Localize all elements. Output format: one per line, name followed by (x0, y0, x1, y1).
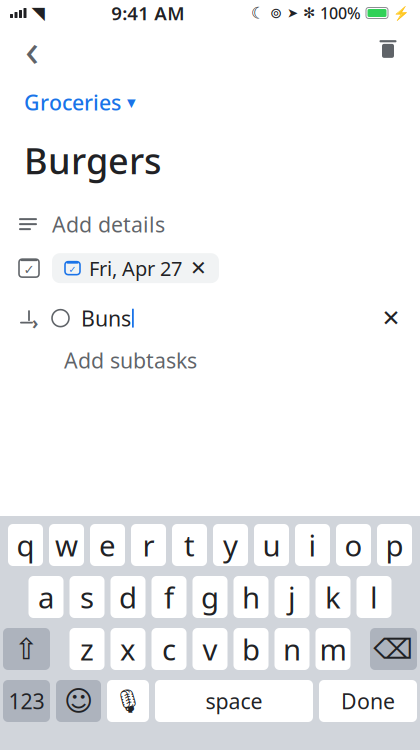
staticText: Groceries (24, 88, 121, 116)
staticText: ◥ (31, 3, 44, 23)
staticText: space (205, 687, 262, 715)
staticText: f (164, 577, 174, 616)
staticText: x (120, 629, 136, 668)
staticText: l (370, 577, 378, 616)
staticText: ⚡ (393, 5, 410, 21)
staticText: ✕ (381, 305, 400, 331)
button[interactable]: b (233, 628, 268, 670)
staticText: Done (341, 687, 395, 715)
staticText: ✻ (303, 5, 315, 21)
staticText: n (283, 629, 301, 668)
staticText: o (344, 525, 362, 564)
button[interactable]: q (8, 524, 43, 566)
staticText: b (242, 629, 260, 668)
button[interactable]: space (155, 680, 313, 722)
staticText: ⇧ (14, 632, 39, 666)
button[interactable]: y (213, 524, 248, 566)
staticText: ➤ (287, 5, 298, 20)
staticText: ⌫ (373, 633, 413, 665)
button[interactable]: Emoji (56, 680, 101, 722)
staticText: a (38, 577, 54, 616)
staticText: Add subtasks (64, 346, 197, 374)
staticText: Fri, Apr 27 (89, 255, 182, 281)
button[interactable]: l (356, 576, 391, 618)
staticText: r (142, 525, 154, 564)
button[interactable]: s (69, 576, 104, 618)
staticText: Burgers (24, 136, 161, 184)
staticText: h (242, 577, 260, 616)
staticText: d (119, 577, 137, 616)
button[interactable]: g (192, 576, 227, 618)
button[interactable]: Add subtasks (0, 342, 420, 378)
staticText: ▾ (127, 92, 136, 112)
button[interactable]: i (295, 524, 330, 566)
button[interactable]: w (49, 524, 84, 566)
staticText: i (308, 525, 316, 564)
button[interactable]: Remove subtask (374, 301, 408, 335)
staticText: u (262, 525, 280, 564)
staticText: ✓ (68, 264, 76, 275)
button[interactable]: Delete (370, 628, 417, 670)
staticText: y (223, 525, 238, 564)
button[interactable]: j (274, 576, 309, 618)
staticText: p (385, 525, 403, 564)
staticText: t (184, 525, 195, 564)
button[interactable]: d (110, 576, 145, 618)
staticText: z (80, 629, 94, 668)
button[interactable]: Delete task (364, 26, 412, 72)
button[interactable]: ✓ (52, 253, 219, 283)
button[interactable]: f (151, 576, 186, 618)
staticText: s (80, 577, 94, 616)
button[interactable]: h (233, 576, 268, 618)
button[interactable]: Done (319, 680, 417, 722)
staticText: c (162, 629, 176, 668)
button[interactable]: e (90, 524, 125, 566)
button[interactable]: u (254, 524, 289, 566)
button[interactable]: a (28, 576, 63, 618)
button[interactable]: p (377, 524, 412, 566)
button[interactable]: Groceries (24, 84, 136, 120)
staticText: Add details (52, 210, 165, 238)
button[interactable]: m (315, 628, 350, 670)
staticText: ✓ (23, 262, 34, 277)
staticText: v (202, 629, 217, 668)
staticText: e (99, 525, 116, 564)
button[interactable]: n (274, 628, 309, 670)
staticText: g (201, 577, 219, 616)
staticText: ☺ (64, 685, 93, 717)
button[interactable]: Add details (0, 202, 420, 246)
staticText: j (288, 577, 296, 616)
staticText: ✕ (190, 257, 207, 279)
button[interactable]: Back (8, 26, 56, 72)
staticText: Buns (81, 304, 131, 332)
button[interactable]: k (315, 576, 350, 618)
staticText: q (16, 525, 34, 564)
staticText: 🎙 (113, 688, 142, 714)
button[interactable]: z (69, 628, 104, 670)
button[interactable]: Dictate (107, 680, 149, 722)
staticText: 100% (320, 2, 361, 24)
button[interactable]: r (131, 524, 166, 566)
button[interactable]: t (172, 524, 207, 566)
staticText: 9:41 AM (111, 1, 184, 25)
staticText: ⊚ (270, 5, 282, 21)
staticText: ‹ (25, 19, 39, 79)
button[interactable]: v (192, 628, 227, 670)
staticText: › (32, 311, 38, 334)
staticText: k (325, 577, 341, 616)
staticText: w (55, 525, 78, 564)
button[interactable]: o (336, 524, 371, 566)
staticText: 123 (8, 687, 44, 715)
button[interactable]: Mark Buns complete (52, 310, 69, 327)
button[interactable]: x (110, 628, 145, 670)
button[interactable]: Shift (3, 628, 50, 670)
staticText: ☾ (251, 4, 265, 22)
staticText: m (319, 629, 346, 668)
button[interactable]: c (151, 628, 186, 670)
button[interactable]: 123 (3, 680, 50, 722)
